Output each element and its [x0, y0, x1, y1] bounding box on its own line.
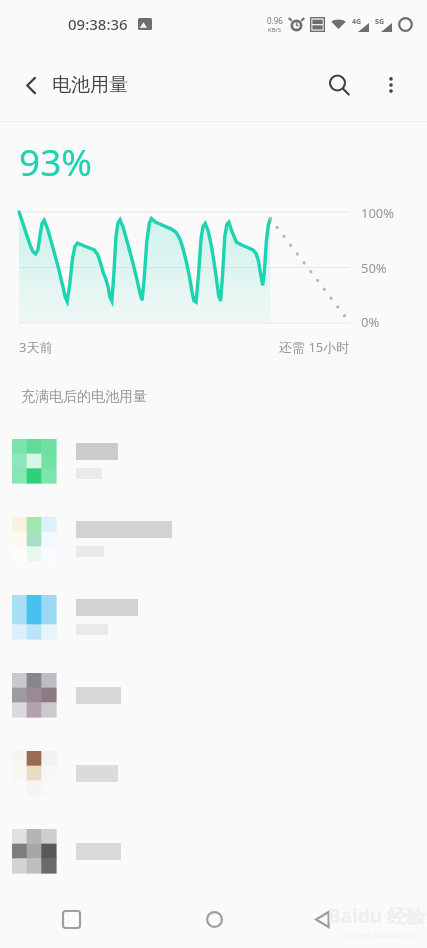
- button[interactable]: [0, 656, 427, 734]
- staticText: 93%: [19, 136, 93, 186]
- staticText: 5G: [375, 17, 385, 27]
- button[interactable]: Home: [143, 890, 285, 948]
- button[interactable]: Recent apps: [0, 890, 143, 948]
- staticText: 09:38:36: [68, 14, 128, 34]
- button[interactable]: [0, 500, 427, 578]
- staticText: 100%: [361, 204, 395, 222]
- button[interactable]: Back: [285, 890, 427, 948]
- staticText: 50%: [361, 259, 387, 277]
- staticText: 还需 15小时: [279, 338, 350, 356]
- button[interactable]: Back: [10, 64, 52, 106]
- staticText: 充满电后的电池用量: [21, 388, 147, 406]
- button[interactable]: More options: [369, 63, 413, 107]
- button[interactable]: [0, 812, 427, 890]
- staticText: 0%: [361, 313, 380, 331]
- staticText: 3天前: [19, 338, 53, 356]
- button[interactable]: Search: [317, 63, 361, 107]
- button[interactable]: [0, 422, 427, 500]
- staticText: 电池用量: [52, 73, 128, 97]
- staticText: 0.96: [267, 15, 283, 26]
- button[interactable]: [0, 578, 427, 656]
- staticText: Baidu 经验: [328, 903, 425, 929]
- button[interactable]: [0, 734, 427, 812]
- staticText: KB/S: [268, 26, 282, 34]
- staticText: 4G: [352, 17, 362, 27]
